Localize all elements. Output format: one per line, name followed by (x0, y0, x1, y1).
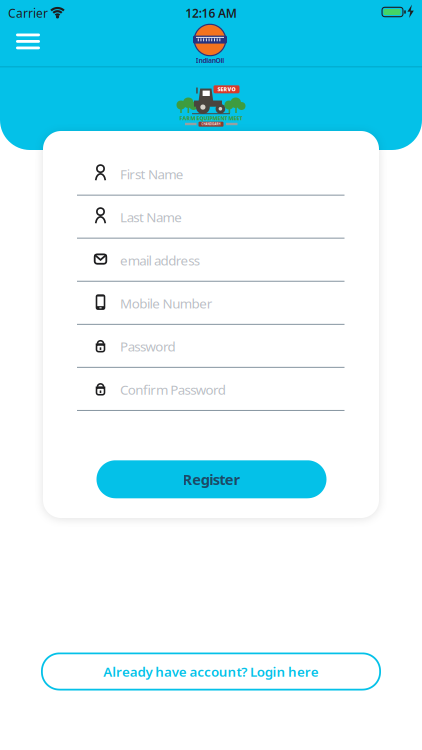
staticText: 12:16 AM (185, 5, 237, 21)
staticText: IndianOil (196, 56, 224, 65)
button[interactable]: Already have account? Login here (41, 652, 381, 690)
staticText: Last Name (120, 208, 182, 226)
staticText: Mobile Number (120, 294, 213, 312)
button[interactable]: Register (96, 460, 326, 498)
staticText: FARM EQUIPMENT MEET (179, 115, 242, 122)
staticText: First Name (120, 165, 184, 183)
staticText: Confirm Password (120, 381, 226, 398)
button[interactable]: Password (43, 325, 379, 368)
staticText: Already have account? Login here (103, 663, 319, 680)
button[interactable]: Last Name (43, 195, 379, 239)
staticText: Register (183, 470, 240, 489)
staticText: email address (120, 251, 200, 269)
staticText: SERVO (217, 86, 235, 93)
staticText: CHANDIGARH (201, 122, 220, 126)
button[interactable]: Menu (16, 33, 40, 49)
staticText: Carrier (8, 5, 48, 21)
staticText: Password (120, 337, 176, 355)
button[interactable]: Confirm Password (43, 368, 379, 411)
button[interactable]: email address (43, 239, 379, 282)
button[interactable]: Mobile Number (43, 282, 379, 325)
button[interactable]: First Name (43, 152, 379, 196)
